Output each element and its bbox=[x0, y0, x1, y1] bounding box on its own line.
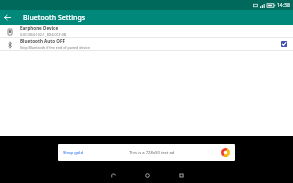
staticText: 0:0C:0B4:102:1, 8D4:0CF:0B bbox=[20, 32, 67, 37]
button[interactable]: Shop gold bbox=[58, 144, 235, 161]
staticText: Bluetooth Auto OFF bbox=[20, 38, 65, 44]
staticText: Shop gold bbox=[63, 150, 84, 156]
button[interactable]: Navigate up bbox=[0, 10, 15, 25]
staticText: Bluetooth Settings bbox=[23, 13, 86, 23]
button[interactable]: Home bbox=[130, 168, 164, 183]
staticText: This is a 728x90 test ad bbox=[129, 150, 175, 156]
button[interactable]: Bluetooth Auto OFF bbox=[0, 38, 293, 50]
staticText: 14:38 bbox=[277, 2, 290, 9]
staticText: Earphone Device bbox=[20, 25, 59, 31]
staticText: Stop Bluetooth if the end of paired devi… bbox=[20, 45, 90, 50]
button[interactable]: Earphone Device bbox=[0, 25, 293, 37]
button[interactable]: Back bbox=[96, 168, 130, 183]
button[interactable]: Recent apps bbox=[164, 168, 198, 183]
button[interactable]: Bluetooth Auto OFF enabled bbox=[279, 39, 289, 49]
